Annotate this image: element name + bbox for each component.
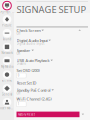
button[interactable]: Standby PoE Control [16, 88, 88, 98]
button[interactable]: Signage Setup [0, 1, 14, 15]
staticText: Digital Audio Input [16, 38, 47, 43]
button[interactable]: Check Screen [16, 28, 88, 38]
staticText: Set OSD (200) [16, 68, 39, 73]
staticText: Speaker [16, 48, 30, 53]
staticText: General [1, 93, 12, 96]
staticText: USB Auto Playback [16, 58, 49, 63]
button[interactable]: Factory Reset [16, 112, 79, 117]
staticText: Reset Set ID [16, 80, 36, 85]
staticText: Off [16, 92, 20, 95]
staticText: Off [16, 32, 20, 35]
button[interactable]: More actions [82, 114, 84, 115]
button[interactable]: USB Auto Playback [16, 58, 88, 68]
staticText: SIGNAGE SETUP [16, 3, 86, 16]
button[interactable]: Wi-Fi Channel (2.4G) [16, 97, 88, 107]
button[interactable]: Value 0 [16, 73, 26, 78]
staticText: 1 [18, 102, 20, 106]
staticText: Check Screen [16, 28, 40, 33]
button[interactable]: Set OSD (200) [16, 68, 88, 78]
staticText: Factory Reset [18, 113, 35, 116]
button[interactable]: Network [0, 42, 14, 56]
button[interactable]: Sound [0, 29, 14, 42]
staticText: Wi-Fi Channel (2.4G) [16, 96, 51, 101]
button[interactable]: Collapse section [78, 29, 81, 31]
button[interactable]: Set Time [0, 70, 14, 84]
staticText: Picture [2, 24, 12, 27]
staticText: On [16, 52, 20, 55]
button[interactable]: User Mode [0, 98, 14, 111]
staticText: Set Time [1, 79, 12, 82]
staticText: My Media [1, 65, 13, 68]
button[interactable]: My Media [0, 56, 14, 70]
button[interactable]: Picture [0, 15, 14, 29]
staticText: User Mode [0, 106, 14, 110]
staticText: Standby PoE Control [16, 87, 50, 93]
button[interactable]: Speaker [16, 48, 88, 58]
button[interactable]: General [0, 84, 14, 98]
staticText: Disable [16, 62, 26, 65]
staticText: Signage Setup [0, 10, 14, 13]
button[interactable]: Value 1 [16, 102, 26, 107]
button[interactable]: Digital Audio Input [16, 38, 88, 48]
staticText: Digital Audio Input [16, 42, 44, 45]
button[interactable]: Reset Set ID [16, 81, 88, 91]
staticText: Network [1, 51, 12, 55]
staticText: 0 [18, 74, 20, 77]
staticText: Sound [2, 37, 11, 41]
